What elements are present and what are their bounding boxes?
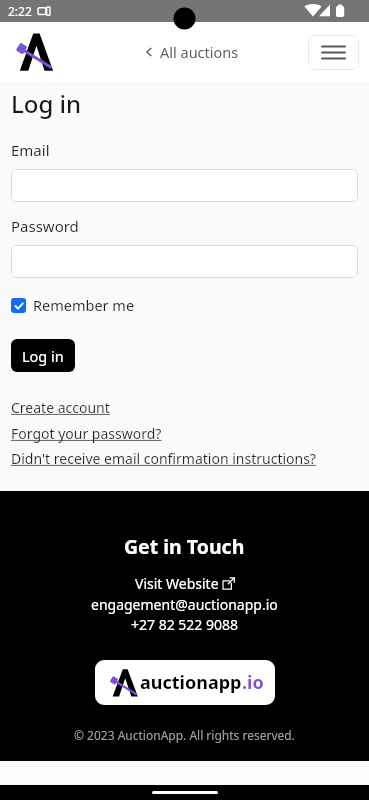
staticText: Forgot your password? bbox=[11, 424, 162, 443]
button[interactable]: Menu bbox=[308, 35, 359, 70]
staticText: Log in bbox=[22, 346, 64, 366]
staticText: Email bbox=[11, 140, 50, 160]
staticText: +27 82 522 9088 bbox=[131, 615, 239, 634]
staticText: All auctions bbox=[160, 42, 239, 62]
staticText: auctionapp bbox=[140, 670, 242, 695]
button[interactable] bbox=[11, 169, 358, 202]
staticText: © 2023 AuctionApp. All rights reserved. bbox=[74, 727, 295, 743]
button[interactable]: All auctions bbox=[142, 42, 239, 62]
button[interactable]: Didn't receive email confirmation instru… bbox=[11, 449, 316, 468]
button[interactable]: Create account bbox=[11, 398, 110, 417]
button[interactable]: Forgot your password? bbox=[11, 424, 162, 443]
staticText: 2:22 bbox=[8, 3, 32, 19]
staticText: Remember me bbox=[33, 295, 135, 315]
button[interactable]: auctionapp bbox=[95, 660, 275, 705]
button[interactable]: Remember me bbox=[11, 295, 135, 315]
button[interactable] bbox=[11, 245, 358, 278]
staticText: .io bbox=[242, 670, 264, 695]
staticText: Create account bbox=[11, 398, 110, 417]
staticText: Didn't receive email confirmation instru… bbox=[11, 449, 316, 468]
staticText: Password bbox=[11, 216, 79, 236]
staticText: engagement@auctionapp.io bbox=[91, 595, 278, 614]
staticText: Visit Website bbox=[135, 574, 219, 593]
button[interactable]: Log in bbox=[11, 339, 75, 372]
staticText: Log in bbox=[11, 87, 82, 120]
staticText: Get in Touch bbox=[124, 533, 245, 560]
button[interactable]: Visit Website bbox=[135, 574, 235, 593]
